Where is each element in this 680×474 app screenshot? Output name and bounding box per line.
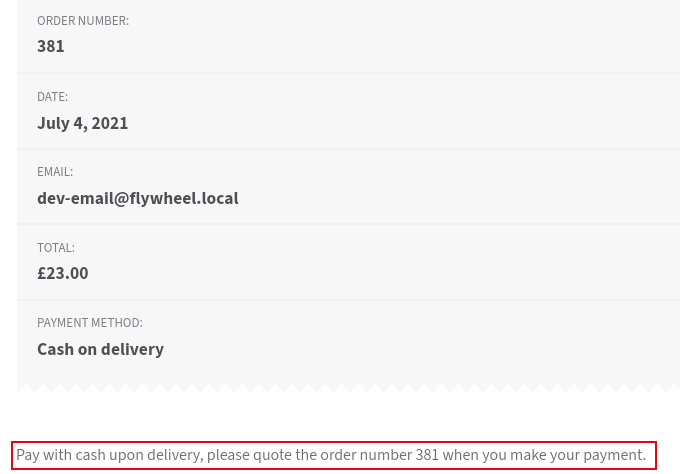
staticText: 381 (37, 34, 65, 59)
staticText: ORDER NUMBER: (37, 12, 130, 31)
staticText: Cash on delivery (37, 337, 165, 362)
staticText: Pay with cash upon delivery, please quot… (16, 444, 647, 467)
staticText: EMAIL: (37, 163, 74, 182)
staticText: £23.00 (37, 261, 89, 286)
staticText: dev-email@flywheel.local (37, 186, 239, 211)
staticText: PAYMENT METHOD: (37, 314, 143, 333)
staticText: DATE: (37, 88, 69, 107)
staticText: TOTAL: (37, 239, 76, 258)
staticText: July 4, 2021 (37, 111, 129, 136)
button[interactable]: Pay with cash upon delivery, please quot… (11, 441, 657, 470)
